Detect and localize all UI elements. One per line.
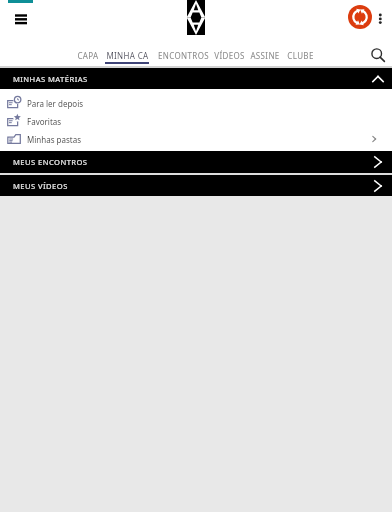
staticText: MINHA CA	[106, 50, 149, 61]
button[interactable]: Home logo	[187, 0, 205, 35]
button[interactable]: VÍDEOS	[206, 44, 253, 68]
button[interactable]: Search	[370, 47, 386, 63]
button[interactable]: ASSINE	[241, 44, 288, 68]
staticText: MINHAS MATÉRIAS	[13, 74, 88, 84]
button[interactable]: MINHA CA	[98, 44, 156, 68]
staticText: CLUBE	[287, 50, 314, 61]
staticText: VÍDEOS	[214, 50, 245, 61]
button[interactable]: Favoritas	[0, 112, 392, 130]
button[interactable]: Refresh	[348, 5, 372, 29]
staticText: ASSINE	[250, 50, 280, 61]
button[interactable]: CLUBE	[280, 44, 321, 68]
staticText: MEUS VÍDEOS	[13, 181, 68, 191]
staticText: Minhas pastas	[27, 134, 82, 145]
button[interactable]: More options	[374, 8, 388, 30]
staticText: ENCONTROS	[158, 50, 209, 61]
button[interactable]: ENCONTROS	[151, 44, 215, 68]
button[interactable]: Open navigation menu	[9, 8, 33, 32]
staticText: CAPA	[77, 50, 99, 61]
button[interactable]: MEUS VÍDEOS	[0, 175, 392, 196]
staticText: Para ler depois	[27, 98, 84, 109]
button[interactable]: Minhas pastas	[0, 130, 392, 148]
staticText: MEUS ENCONTROS	[13, 157, 88, 167]
button[interactable]: MEUS ENCONTROS	[0, 151, 392, 173]
button[interactable]: Para ler depois	[0, 94, 392, 112]
staticText: Favoritas	[27, 116, 62, 127]
button[interactable]: CAPA	[70, 44, 105, 68]
button[interactable]: MINHAS MATÉRIAS	[0, 68, 392, 89]
